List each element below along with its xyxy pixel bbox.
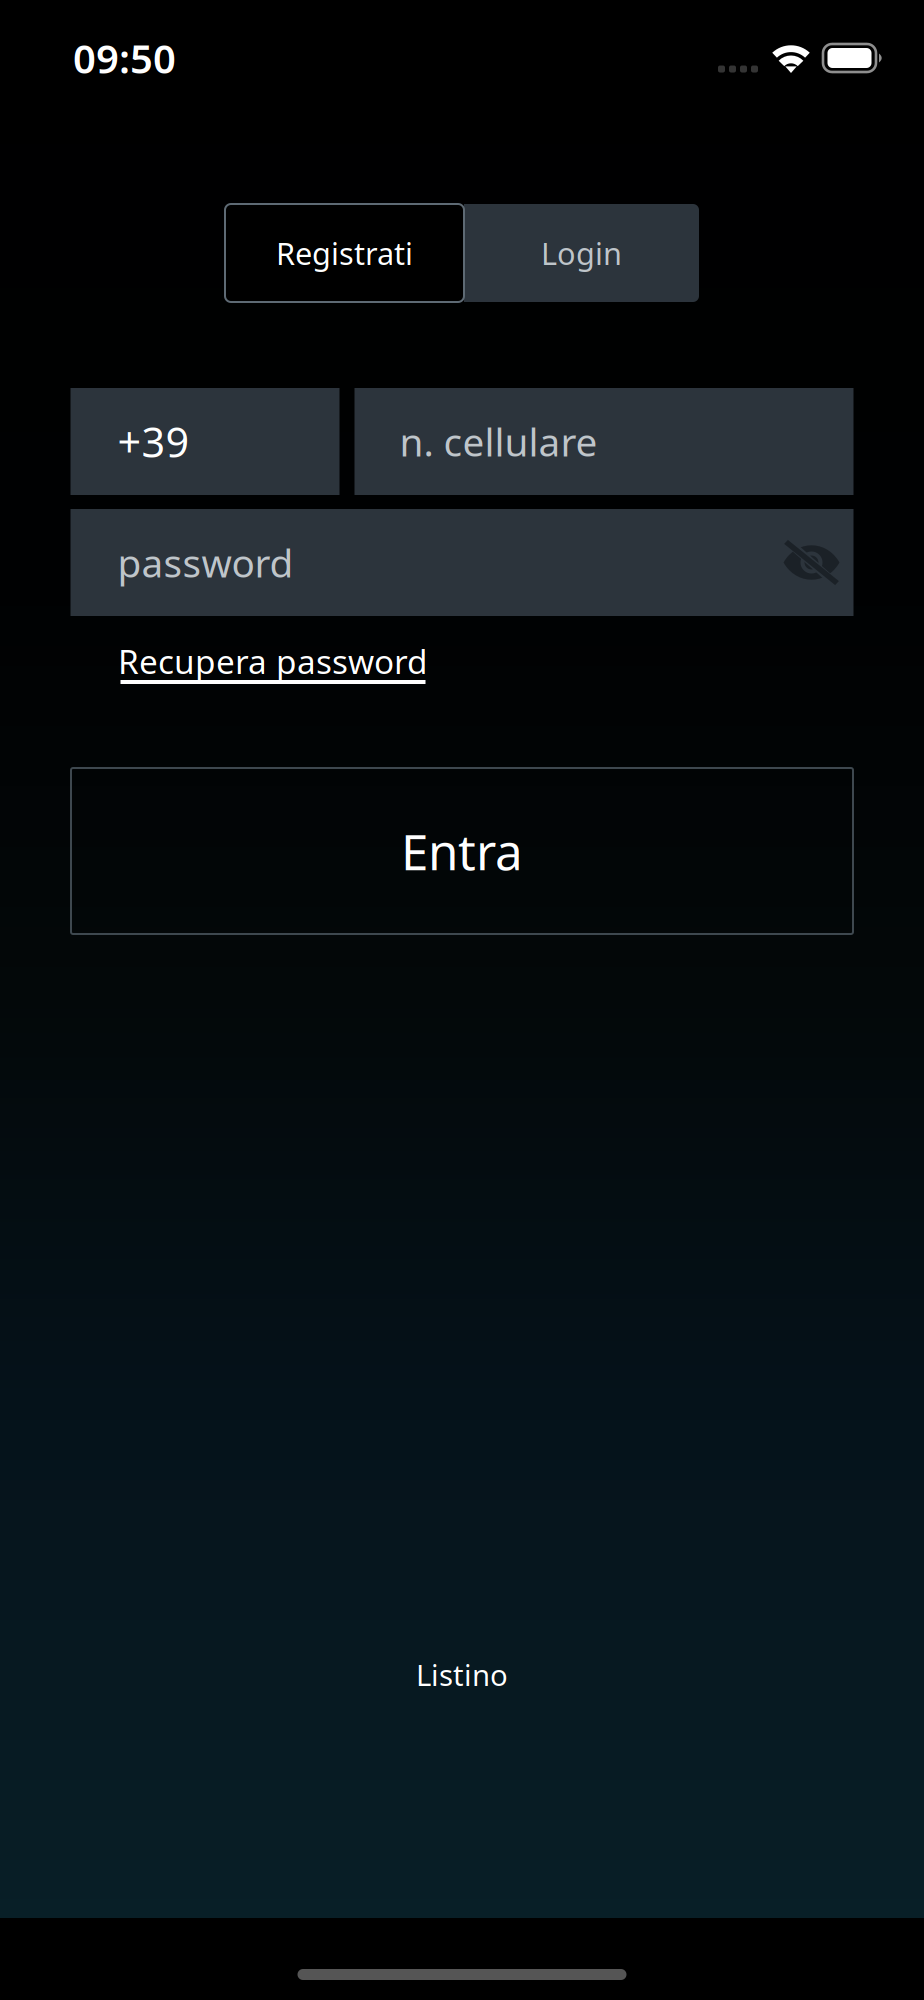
staticText: 09:50 [73,31,176,84]
staticText: Login [541,233,622,273]
button[interactable]: Listino [416,1655,508,1694]
staticText: password [117,537,293,588]
button[interactable]: password [70,509,782,616]
button[interactable]: n. cellulare [354,388,853,495]
button[interactable]: Recupera password [70,642,428,684]
button[interactable]: Registrati [225,204,464,302]
staticText: Recupera password [118,639,428,683]
staticText: Registrati [276,233,413,273]
button[interactable]: Login [464,204,699,302]
button[interactable]: Show password [782,509,853,616]
staticText: +39 [117,414,189,469]
staticText: Listino [416,1655,508,1694]
staticText: n. cellulare [399,416,597,467]
staticText: Entra [401,818,523,884]
button[interactable]: Entra [71,768,853,934]
button[interactable]: +39 [70,388,339,495]
